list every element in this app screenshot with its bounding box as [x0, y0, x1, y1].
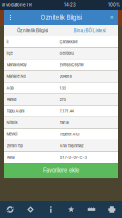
staticText: Ada — [6, 86, 13, 90]
staticText: Nitelik — [6, 120, 17, 125]
staticText: 133 — [59, 86, 65, 90]
staticText: Evreşe/Çeşme — [59, 62, 83, 67]
button[interactable]: Öznitelik Bilgisi — [4, 25, 61, 36]
staticText: Öznitelik Bilgisi — [17, 28, 48, 33]
staticText: Mevkii — [6, 132, 17, 136]
staticText: Ana Taşınmaz — [59, 143, 83, 148]
staticText: ✕ — [109, 14, 113, 21]
staticText: Favorilere ekle — [43, 167, 79, 174]
staticText: Öznitelik Bilgisi — [40, 14, 81, 21]
staticText: İl — [6, 39, 8, 44]
staticText: ıll vodafone TR — [2, 2, 32, 8]
button[interactable]: Favorites — [61, 201, 81, 218]
button[interactable]: Close — [105, 10, 118, 25]
staticText: 7.171,44 — [59, 109, 73, 113]
staticText: 14:23 — [64, 2, 76, 8]
staticText: İlçe — [6, 51, 12, 56]
staticText: Çanakkale — [59, 39, 77, 44]
button[interactable]: Locate — [20, 201, 41, 218]
button[interactable]: Measure — [81, 201, 102, 218]
button[interactable]: Favorilere ekle — [4, 163, 118, 178]
staticText: Zemin Tip — [6, 143, 22, 148]
staticText: Mahalle No — [6, 74, 25, 79]
staticText: Mahalle/Köy — [6, 62, 26, 67]
staticText: Parsel — [6, 97, 16, 102]
staticText: 273 — [59, 97, 65, 102]
staticText: Pafta — [6, 155, 14, 160]
staticText: Tarla — [59, 120, 68, 125]
staticText: Tepeler Arcı — [59, 132, 79, 136]
staticText: Bina/BÖ Listesi — [73, 28, 105, 33]
button[interactable]: Bina/BÖ Listesi — [61, 25, 118, 36]
button[interactable]: Refresh — [0, 201, 20, 218]
staticText: Tapu Alanı — [6, 109, 24, 113]
staticText: 204818 — [59, 74, 71, 79]
staticText: Gelibolu — [59, 51, 73, 56]
button[interactable]: Menu — [4, 10, 17, 25]
staticText: 100% — [108, 2, 120, 8]
staticText: G17-D-07-C-3 — [59, 155, 86, 160]
button[interactable]: Info — [41, 201, 61, 218]
button[interactable]: Print — [102, 201, 122, 218]
